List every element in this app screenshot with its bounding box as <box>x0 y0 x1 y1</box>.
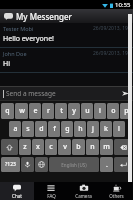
staticText: p <box>124 106 129 116</box>
staticText: w <box>19 106 25 116</box>
button[interactable]: l <box>113 121 125 137</box>
button[interactable]: Shift <box>1 139 18 155</box>
button[interactable]: a <box>9 121 21 137</box>
button[interactable]: Voice input <box>21 157 34 172</box>
staticText: Send a message <box>6 89 56 98</box>
button[interactable]: Camera <box>67 182 100 200</box>
button[interactable]: Settings <box>35 157 48 172</box>
staticText: 26/09/2013, 19 <box>93 50 128 57</box>
button[interactable]: Send <box>121 89 130 98</box>
button[interactable]: k <box>100 121 112 137</box>
button[interactable]: h <box>74 121 86 137</box>
staticText: Chat <box>12 193 22 199</box>
staticText: g <box>65 124 70 134</box>
staticText: x <box>36 142 40 152</box>
staticText: FAQ <box>47 193 56 199</box>
button[interactable]: John Doe <box>0 48 133 72</box>
staticText: Camera <box>75 193 92 199</box>
staticText: Hi <box>3 59 10 69</box>
button[interactable]: Tester Mobi <box>0 23 133 47</box>
staticText: My Messenger <box>16 11 72 22</box>
staticText: h <box>78 124 83 134</box>
staticText: ?123 <box>5 161 16 168</box>
button[interactable]: o <box>107 103 119 119</box>
staticText: b <box>76 142 81 152</box>
button[interactable]: y <box>68 103 80 119</box>
staticText: j <box>92 124 94 134</box>
staticText: q <box>5 106 10 116</box>
button[interactable]: v <box>58 139 71 155</box>
staticText: z <box>23 142 27 152</box>
staticText: a <box>13 124 18 134</box>
staticText: r <box>47 106 50 116</box>
button[interactable]: Send a message <box>0 87 133 100</box>
staticText: . <box>106 160 108 170</box>
button[interactable]: . <box>100 157 113 172</box>
staticText: Tester Mobi <box>3 25 34 32</box>
button[interactable]: z <box>19 139 31 155</box>
button[interactable]: FAQ <box>34 182 67 200</box>
button[interactable]: x <box>32 139 44 155</box>
staticText: c <box>49 142 53 152</box>
button[interactable]: ?123 <box>1 157 20 172</box>
button[interactable]: My Messenger <box>0 9 72 23</box>
button[interactable]: f <box>48 121 60 137</box>
staticText: k <box>104 124 108 134</box>
button[interactable]: q <box>1 103 14 119</box>
staticText: Hello everyone! <box>3 34 54 44</box>
staticText: u <box>85 106 90 116</box>
staticText: John Doe <box>3 50 27 57</box>
button[interactable]: n <box>86 139 99 155</box>
staticText: Others <box>109 193 124 199</box>
button[interactable]: b <box>72 139 85 155</box>
staticText: English (US) <box>61 162 87 168</box>
staticText: i <box>99 106 101 116</box>
button[interactable]: w <box>15 103 28 119</box>
button[interactable]: Others <box>100 182 133 200</box>
button[interactable]: t <box>55 103 67 119</box>
staticText: f <box>53 124 56 134</box>
button[interactable]: c <box>45 139 57 155</box>
button[interactable]: d <box>35 121 47 137</box>
staticText: l <box>118 124 120 134</box>
button[interactable]: m <box>100 139 113 155</box>
staticText: e <box>33 106 38 116</box>
staticText: 10:55 <box>115 1 131 9</box>
staticText: 26/09/2013, 19 <box>93 25 128 32</box>
button[interactable]: g <box>61 121 73 137</box>
button[interactable]: j <box>87 121 99 137</box>
staticText: o <box>111 106 116 116</box>
staticText: n <box>90 142 95 152</box>
staticText: t <box>60 106 63 116</box>
button[interactable]: e <box>29 103 41 119</box>
staticText: v <box>63 142 67 152</box>
button[interactable]: Chat <box>0 182 34 200</box>
button[interactable]: Backspace <box>114 139 132 155</box>
button[interactable]: p <box>120 103 132 119</box>
staticText: s <box>26 124 30 134</box>
button[interactable]: More options <box>123 9 133 23</box>
button[interactable]: Enter <box>114 157 132 172</box>
staticText: d <box>39 124 44 134</box>
button[interactable]: i <box>94 103 106 119</box>
button[interactable]: English (US) <box>49 157 99 172</box>
button[interactable]: u <box>81 103 93 119</box>
button[interactable]: s <box>22 121 34 137</box>
staticText: m <box>103 142 110 152</box>
button[interactable]: r <box>42 103 54 119</box>
staticText: y <box>72 106 76 116</box>
